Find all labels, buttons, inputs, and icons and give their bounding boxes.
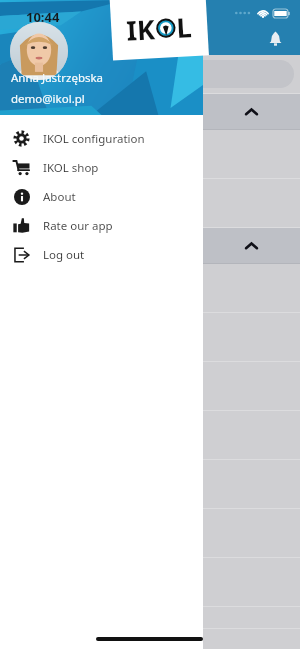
staticText: Log out <box>43 247 85 263</box>
staticText: About <box>43 189 76 205</box>
button[interactable] <box>0 228 300 263</box>
button[interactable] <box>0 411 300 460</box>
button[interactable]: Log out <box>0 240 203 269</box>
button[interactable] <box>0 179 300 228</box>
staticText: Anna Jastrzębska <box>11 70 104 86</box>
button[interactable] <box>0 130 300 179</box>
button[interactable] <box>0 558 300 607</box>
button[interactable]: Rate our app <box>0 211 203 240</box>
button[interactable] <box>0 264 300 313</box>
button[interactable] <box>0 509 300 558</box>
button[interactable]: IKOL configuration <box>0 124 203 153</box>
button[interactable] <box>0 460 300 509</box>
staticText: IK <box>125 10 156 49</box>
button[interactable]: IKOL shop <box>0 153 203 182</box>
button[interactable]: Notifications <box>258 21 292 55</box>
button[interactable] <box>0 94 300 129</box>
staticText: IKOL shop <box>43 160 99 176</box>
button[interactable]: About <box>0 182 203 211</box>
staticText: Rate our app <box>43 218 113 234</box>
staticText: 10:44 <box>26 8 60 26</box>
staticText: IKOL configuration <box>43 131 145 147</box>
staticText: demo@ikol.pl <box>11 91 85 107</box>
button[interactable]: E SCS <box>0 607 300 649</box>
staticText: L <box>175 8 193 46</box>
button[interactable] <box>0 362 300 411</box>
button[interactable] <box>0 313 300 362</box>
button[interactable] <box>6 60 294 88</box>
